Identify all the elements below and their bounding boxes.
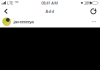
staticText: 08:41 AM bbox=[41, 0, 58, 5]
button[interactable]: Refresh bbox=[88, 6, 98, 16]
staticText: janeeeeeya bbox=[13, 19, 33, 24]
button[interactable]: More options bbox=[90, 16, 97, 28]
button[interactable]: Back bbox=[1, 6, 10, 16]
staticText: LTE bbox=[7, 0, 13, 5]
button[interactable]: janeeeeeya bbox=[2, 16, 33, 28]
staticText: Add bbox=[45, 9, 54, 14]
staticText: 28% bbox=[84, 0, 91, 5]
